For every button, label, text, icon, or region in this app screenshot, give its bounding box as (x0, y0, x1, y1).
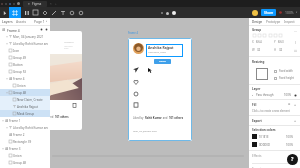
staticText: Rectangle 39 (13, 140, 32, 144)
button[interactable]: Fill options (288, 103, 291, 106)
button[interactable]: Frame tool (9, 7, 21, 18)
button[interactable]: Text (58, 7, 67, 18)
staticText: Fixed width (279, 69, 293, 73)
staticText: Mon, 04 January 2021 (13, 35, 44, 39)
staticText: Selection colors (252, 128, 276, 132)
button[interactable]: Group 48 (6, 89, 48, 96)
button[interactable]: Frame 4 (6, 75, 48, 82)
button[interactable]: Page 1 (34, 19, 45, 24)
button[interactable]: Liked by Rohit Kumar and 101 … (6, 124, 48, 131)
staticText: + (55, 2, 57, 6)
button[interactable]: Design (252, 20, 263, 24)
staticText: Frame 1 (9, 119, 21, 123)
button[interactable]: Move tool (1, 7, 9, 18)
staticText: and (48, 115, 55, 119)
button[interactable]: Add export (294, 118, 297, 123)
staticText: Frame 4 (7, 28, 20, 32)
button[interactable]: Rectangle (31, 7, 40, 18)
button[interactable]: Prototype (266, 20, 281, 24)
button[interactable]: Account avatar (252, 10, 258, 16)
staticText: Frame 3 (9, 147, 21, 151)
staticText: 101 others (169, 116, 184, 120)
staticText: Layer (252, 87, 261, 91)
staticText: Union (13, 154, 22, 158)
button[interactable]: Pencil (49, 7, 58, 18)
staticText: 100% (285, 10, 294, 15)
staticText: 8.63 (278, 40, 284, 44)
button[interactable]: Frame 3 (2, 145, 48, 152)
staticText: Group (252, 28, 262, 32)
staticText: + (294, 102, 297, 107)
button[interactable]: Assets (16, 19, 27, 24)
staticText: Group 53 (13, 70, 27, 74)
button[interactable]: Mask Group (10, 110, 48, 117)
staticText: W (252, 48, 255, 52)
staticText: 32 (257, 48, 261, 52)
button[interactable]: Anshika Rajput (10, 103, 48, 110)
button[interactable]: Icon (6, 47, 48, 54)
staticText: Group 48 (13, 161, 27, 165)
staticText: India (64, 47, 69, 49)
button[interactable]: Frame 1 (2, 117, 48, 124)
button[interactable]: Group 53 (6, 68, 48, 75)
staticText: Export (252, 119, 262, 123)
staticText: Resizing (252, 60, 265, 64)
button[interactable]: Group 49 (6, 54, 48, 61)
staticText: Share (264, 10, 274, 15)
staticText: Liked by (133, 116, 145, 120)
button[interactable]: Figma (23, 1, 47, 7)
button[interactable]: Group 48 (6, 159, 48, 166)
staticText: ? (291, 156, 294, 163)
staticText: Y (274, 40, 276, 44)
staticText: Union (17, 84, 26, 88)
staticText: X (252, 40, 254, 44)
button[interactable]: Help (287, 154, 298, 165)
button[interactable]: Frame 2 (6, 131, 48, 138)
staticText: and (162, 116, 169, 120)
staticText: Figma (32, 2, 42, 6)
staticText: New Claim, Create (17, 98, 43, 102)
button[interactable]: Union (6, 152, 48, 159)
staticText: 101 others (55, 115, 69, 119)
staticText: 100% (286, 135, 294, 139)
staticText: + (294, 118, 297, 123)
button[interactable]: Layers (2, 19, 13, 24)
button[interactable]: Frame 4 (2, 26, 48, 33)
button[interactable]: New Claim, Create (10, 96, 48, 103)
button[interactable]: Mon, 04 January 2021 (6, 33, 48, 40)
staticText: Icon (13, 49, 20, 53)
staticText: Anshika Rajput (148, 45, 174, 50)
staticText: 1E1E1E (259, 135, 269, 139)
staticText: Mon, 04 January 2021 (133, 129, 158, 132)
button[interactable]: Follow (154, 59, 171, 64)
staticText: Anshika Rajput (17, 105, 39, 109)
button[interactable]: Add fill (294, 102, 297, 107)
staticText: Export (252, 167, 262, 168)
button[interactable]: Button (6, 61, 48, 68)
staticText: Frame 2 (13, 133, 25, 137)
staticText: Frame 4 (13, 77, 25, 81)
button[interactable]: Union (10, 82, 48, 89)
staticText: 8.64 (256, 40, 262, 44)
staticText: Mask Group (17, 112, 35, 116)
button[interactable]: Inspect (284, 20, 295, 24)
button[interactable]: Rectangle 39 (6, 138, 48, 145)
staticText: Fixed height (279, 76, 294, 80)
staticText: Liked by (20, 115, 31, 119)
button[interactable]: Comment (67, 7, 76, 18)
button[interactable]: Share (261, 9, 276, 16)
staticText: ▾ (252, 94, 254, 96)
button[interactable]: Liked by Rohit Kumar and 101 … (6, 40, 48, 47)
button[interactable]: Shape tools (22, 7, 31, 18)
button[interactable]: Pen (40, 7, 49, 18)
staticText: Button (13, 63, 23, 67)
staticText: × (50, 2, 52, 6)
button[interactable]: More options (76, 7, 85, 18)
staticText: Assets (16, 19, 27, 24)
staticText: Design (252, 20, 263, 24)
staticText: Click + to create a new element (252, 109, 290, 113)
staticText: 100% (284, 93, 292, 97)
staticText: 32 (279, 48, 283, 52)
staticText: Group 48 (13, 91, 27, 95)
staticText: Anshika R (64, 41, 74, 44)
